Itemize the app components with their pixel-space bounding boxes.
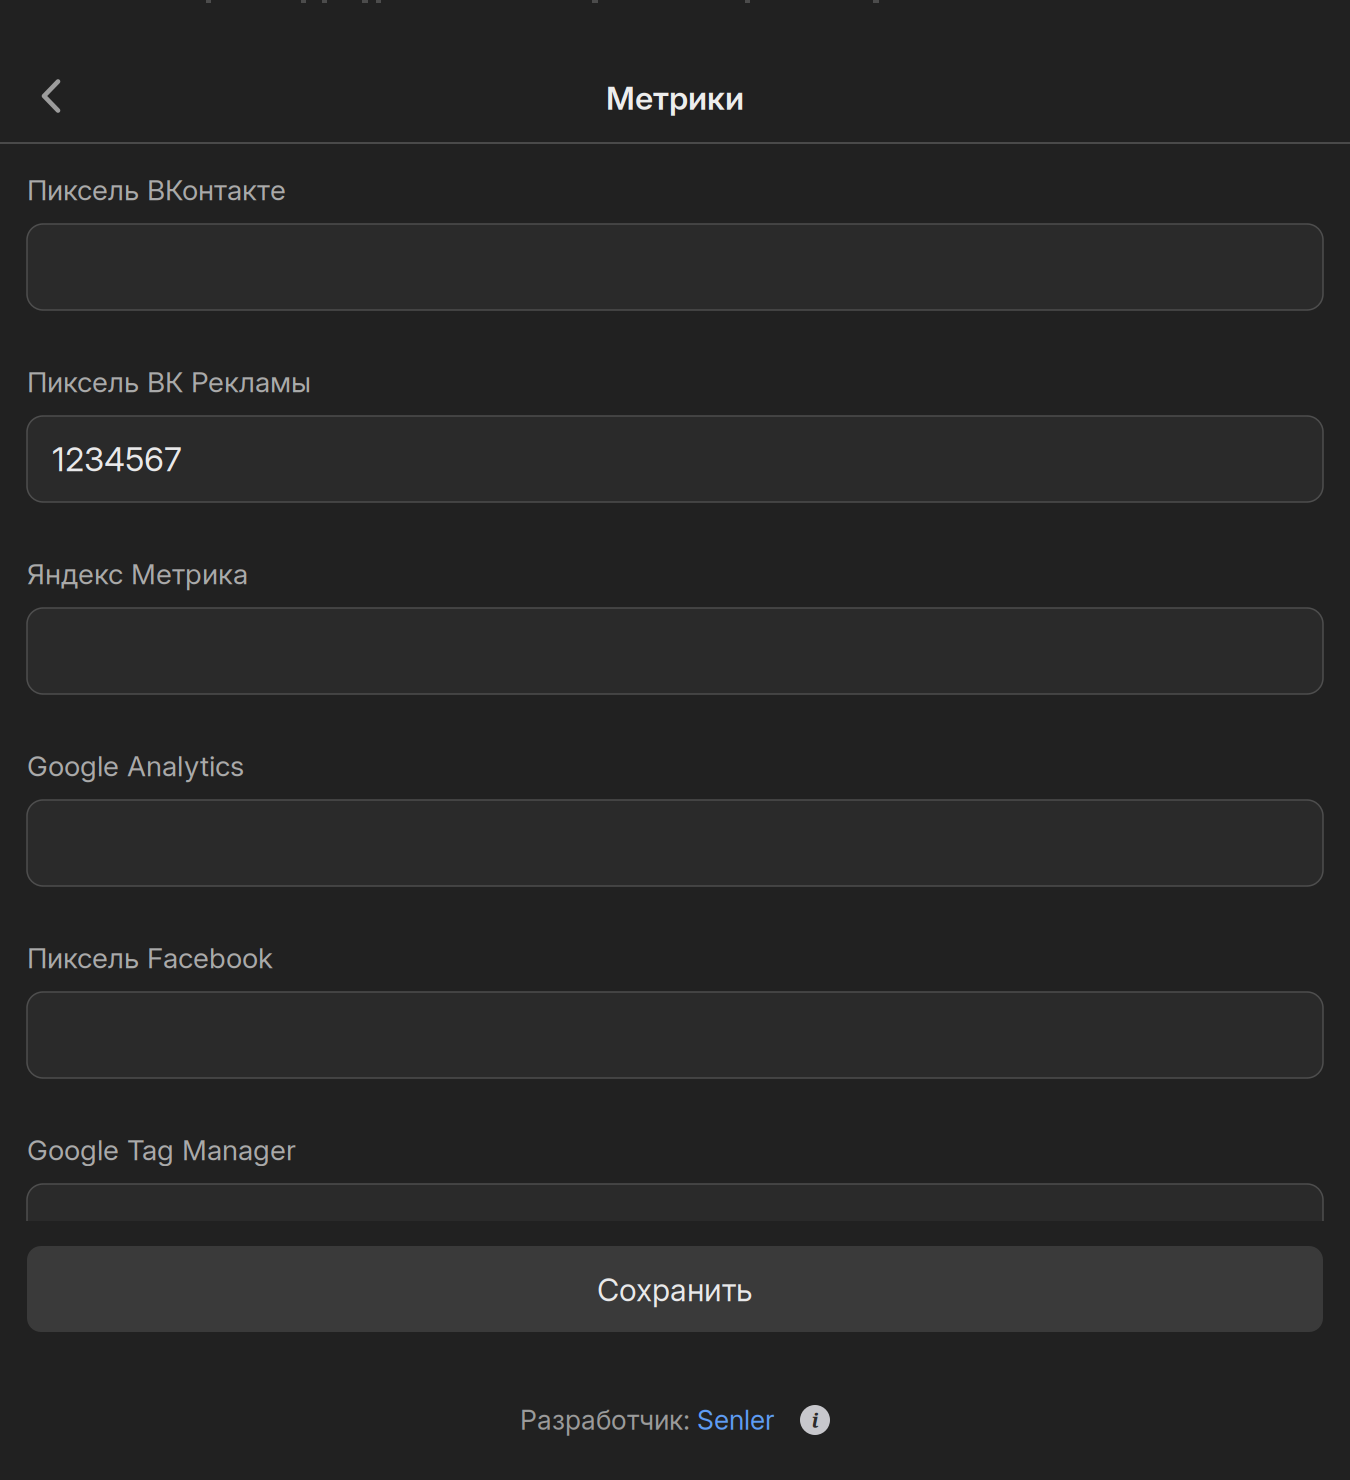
staticText: Яндекс Метрика — [27, 557, 248, 591]
staticText: 1234567 — [52, 439, 182, 479]
staticText: Сохранить — [597, 1271, 753, 1308]
staticText: Пиксель ВК Рекламы — [27, 365, 311, 399]
button[interactable] — [27, 608, 1323, 694]
button[interactable] — [27, 224, 1323, 310]
staticText: Пиксель ВКонтакте — [27, 173, 286, 207]
button[interactable]: Senler — [697, 1404, 775, 1436]
button[interactable] — [27, 800, 1323, 886]
button[interactable]: Сохранить — [27, 1246, 1323, 1332]
staticText: i — [811, 1406, 818, 1434]
staticText: Пиксель Facebook — [27, 941, 273, 975]
staticText: Метрики — [606, 79, 744, 117]
button[interactable] — [27, 1184, 1323, 1270]
staticText: Google Analytics — [27, 749, 244, 783]
staticText: Google Tag Manager — [27, 1133, 296, 1167]
button[interactable]: Information — [800, 1405, 830, 1435]
staticText: Разработчик: — [520, 1404, 697, 1436]
button[interactable]: 1234567 — [27, 416, 1323, 502]
button[interactable] — [27, 992, 1323, 1078]
staticText: Senler — [697, 1404, 775, 1436]
button[interactable]: Back — [9, 54, 93, 138]
